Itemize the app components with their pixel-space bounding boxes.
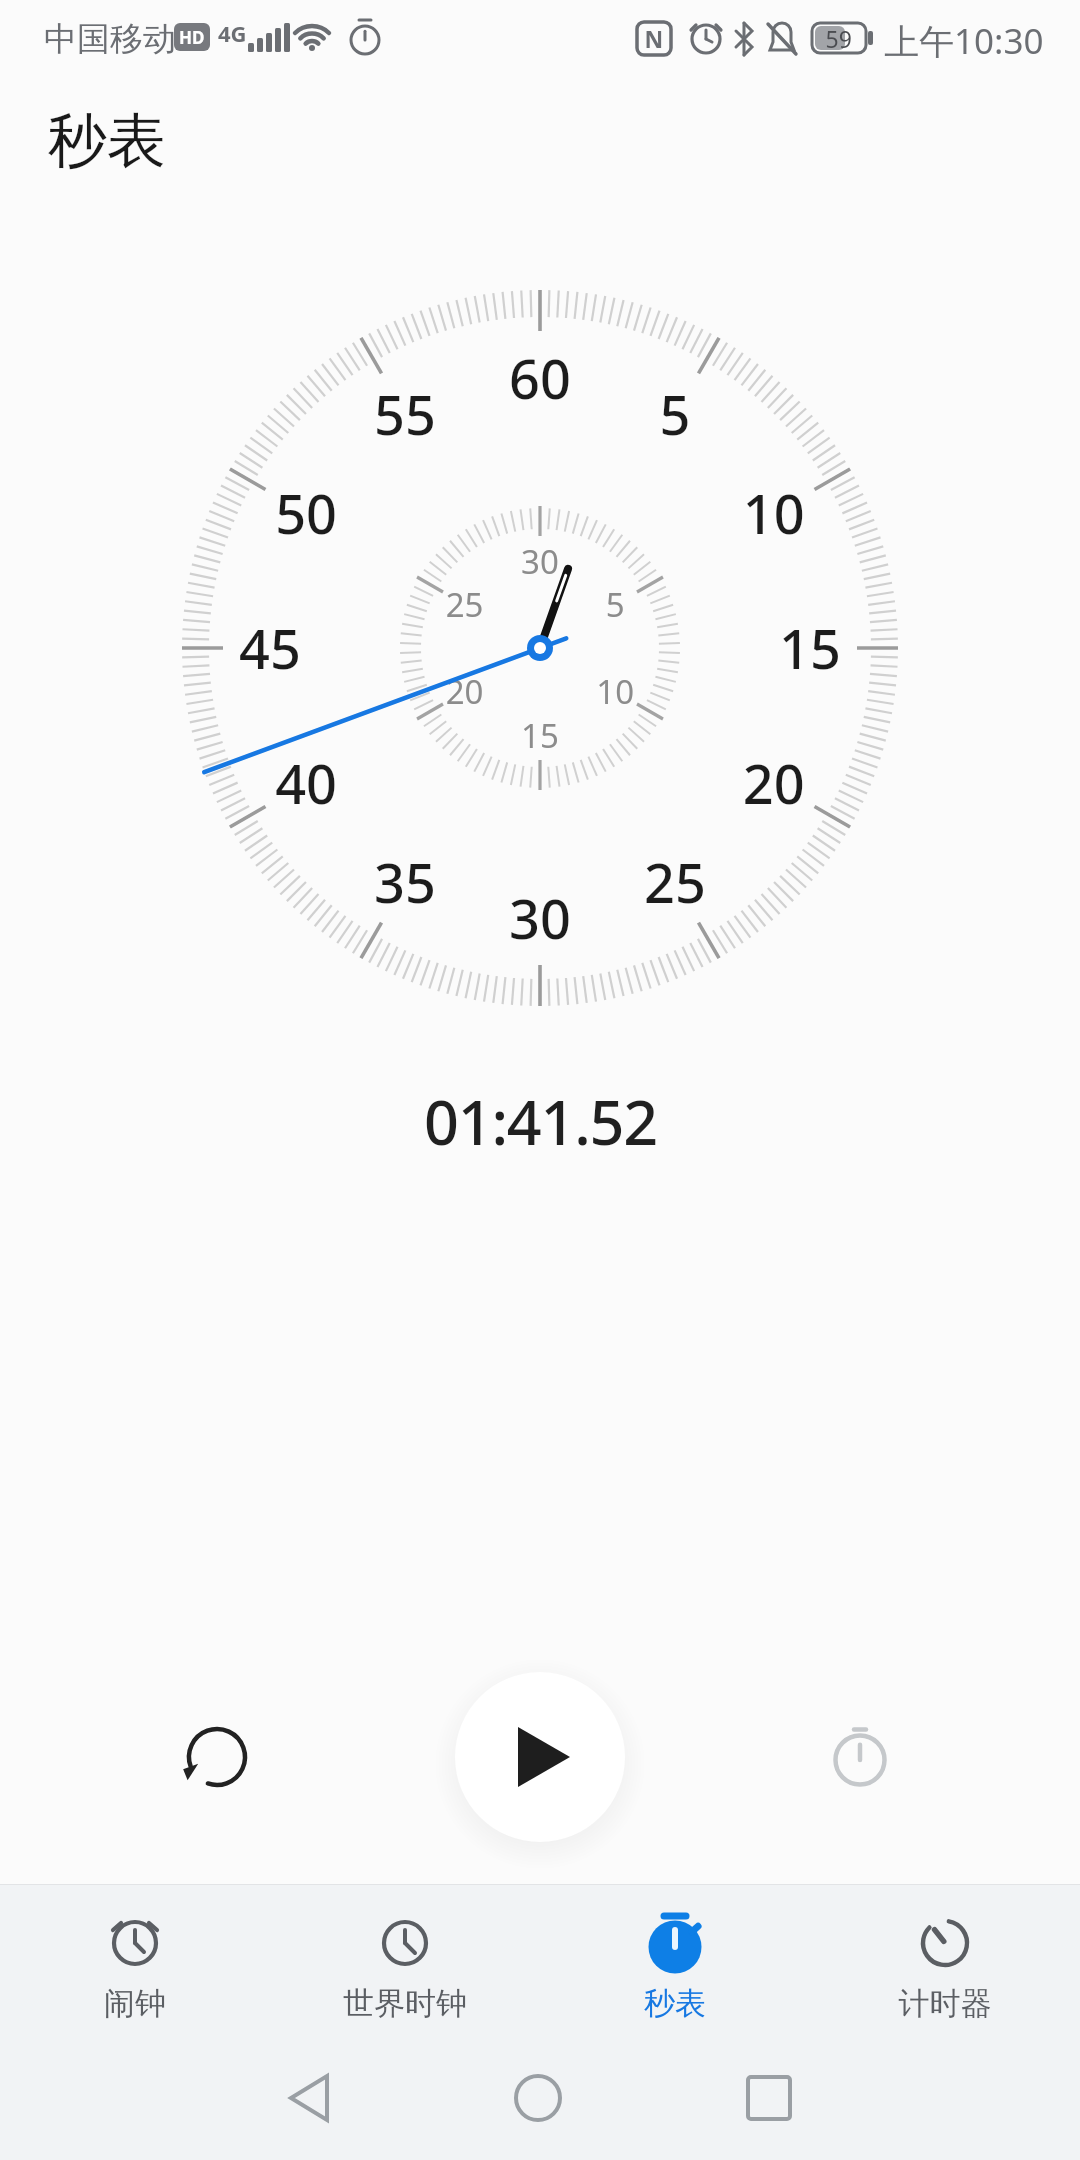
button[interactable]	[468, 2043, 608, 2153]
button[interactable]	[835, 1886, 1055, 2031]
button[interactable]	[800, 1698, 920, 1818]
staticText: 上午10:30	[884, 17, 1044, 65]
button[interactable]	[25, 1886, 245, 2031]
staticText: 秒表	[48, 104, 166, 178]
staticText: 中国移动	[44, 18, 176, 60]
button[interactable]	[157, 1697, 277, 1817]
staticText: 01:41.52	[424, 1080, 657, 1163]
button[interactable]	[565, 1886, 785, 2031]
button[interactable]	[239, 2043, 379, 2153]
button[interactable]	[699, 2043, 839, 2153]
button[interactable]	[455, 1672, 625, 1842]
button[interactable]	[295, 1886, 515, 2031]
